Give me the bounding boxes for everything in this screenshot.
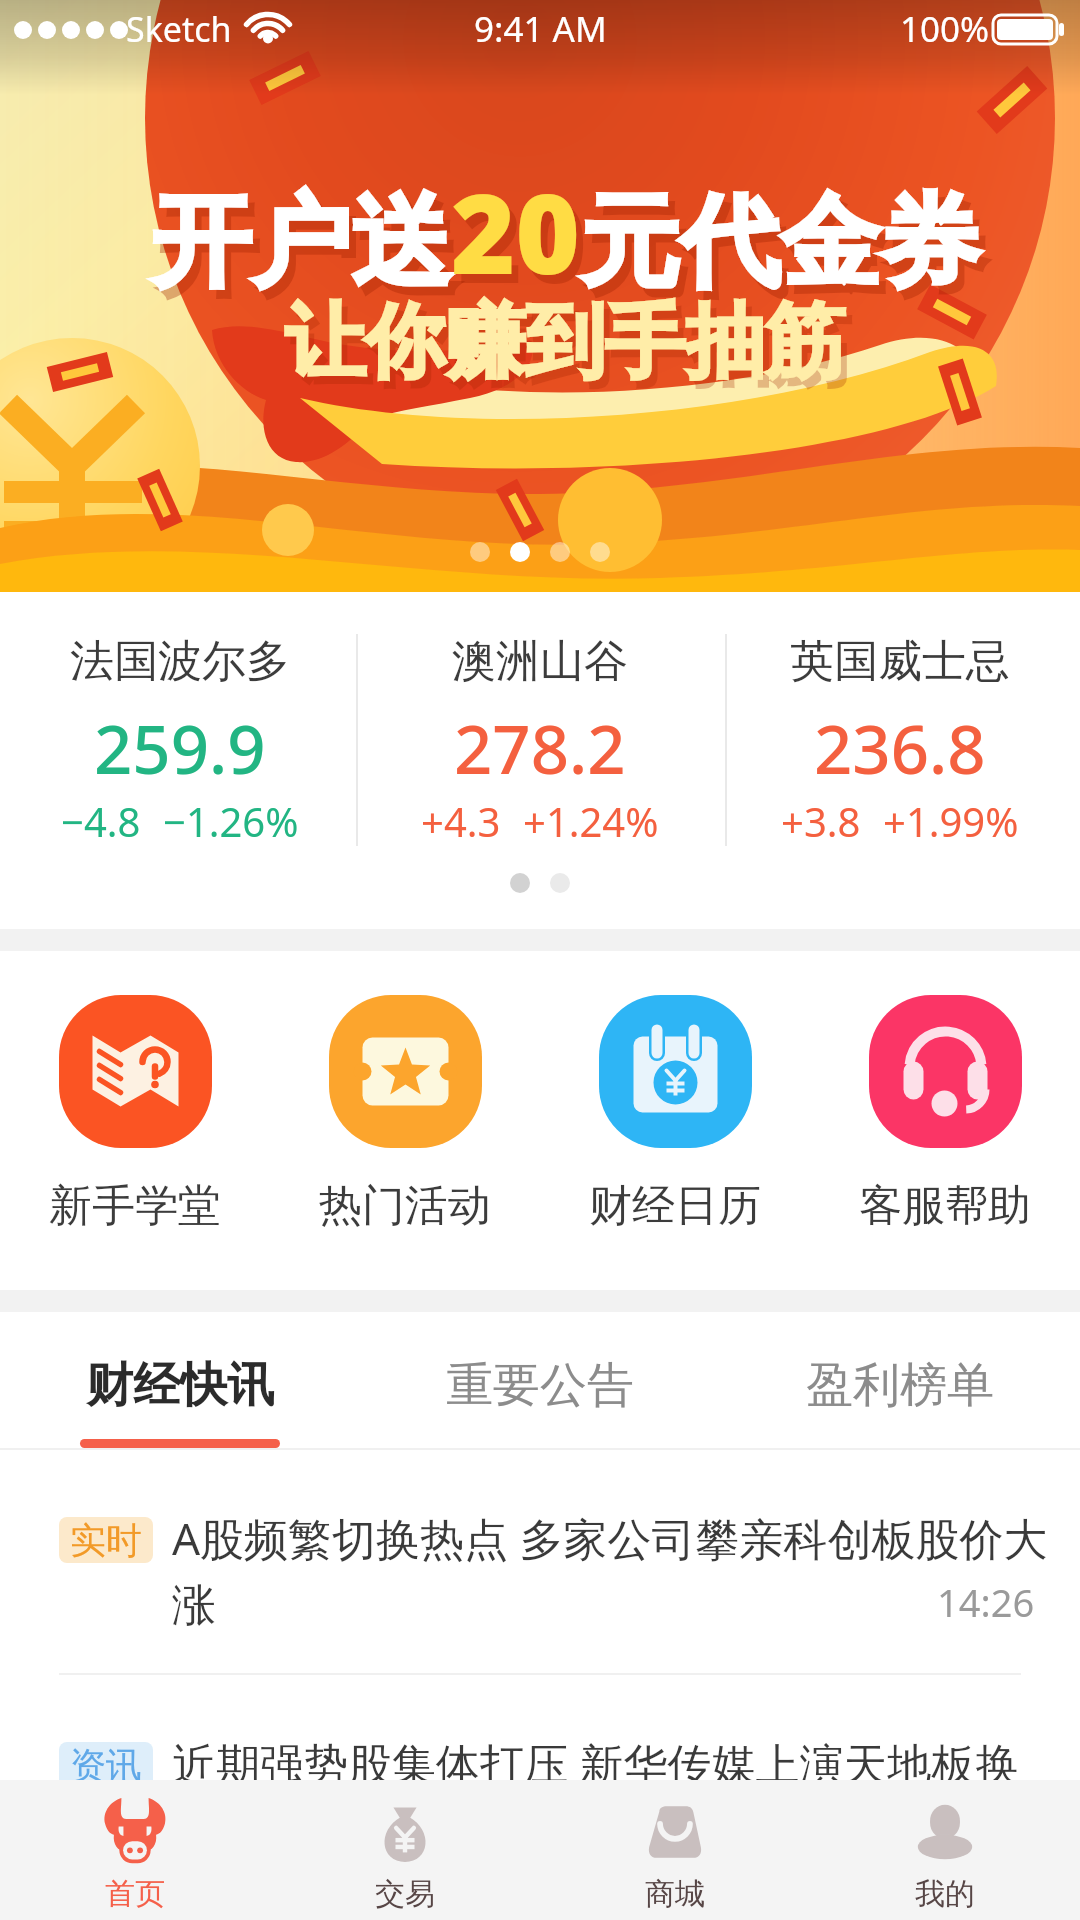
staticText: −1.26% [163,794,299,848]
staticText: Sketch [126,6,232,52]
staticText: 法国波尔多 [70,634,290,689]
staticText: 盈利榜单 [806,1356,994,1415]
staticText: 首页 [105,1875,165,1913]
staticText: 客服帮助 [859,1179,1031,1233]
staticText: 重要公告 [446,1356,634,1415]
staticText: +4.3 [421,794,501,848]
button[interactable]: 商城 [540,1780,810,1920]
staticText: 让你赚到手抽筋 [285,292,845,393]
staticText: 财经日历 [589,1179,761,1233]
staticText: 14:26 [937,1576,1035,1628]
staticText: −4.8 [61,794,141,848]
staticText: 278.2 [454,702,626,793]
button[interactable]: 我的 [810,1780,1080,1920]
button[interactable]: Promotion banner [0,0,1080,592]
button[interactable]: 澳洲山谷 [360,592,720,862]
staticText: 让你赚到手抽筋 [291,300,851,401]
staticText: 商城 [645,1875,705,1913]
button[interactable]: 首页 [0,1780,270,1920]
staticText: 热门活动 [319,1179,491,1233]
staticText: 元代金券 [580,180,980,306]
button[interactable]: 财经日历 [540,951,810,1290]
staticText: 英国威士忌 [790,634,1010,689]
button[interactable]: 新手学堂 [0,951,270,1290]
staticText: 100% [900,5,990,53]
staticText: 资讯 [70,1743,142,1788]
staticText: 20 [458,165,587,315]
staticText: 实时 [70,1518,142,1563]
button[interactable]: 英国威士忌 [720,592,1080,862]
staticText: +1.99% [883,794,1019,848]
button[interactable]: 客服帮助 [810,951,1080,1290]
staticText: +1.24% [523,794,659,848]
button[interactable]: 资讯 [0,1675,1080,1825]
button[interactable]: 交易 [270,1780,540,1920]
staticText: 9:41 AM [474,5,607,53]
staticText: 涨 [172,1578,216,1633]
staticText: 开户送 [158,189,458,315]
staticText: +3.8 [781,794,861,848]
staticText: A股频繁切换热点 多家公司攀亲科创板股价大 [172,1508,1048,1568]
staticText: 财经快讯 [86,1356,274,1415]
staticText: 259.9 [94,702,266,793]
button[interactable]: 盈利榜单 [720,1312,1080,1450]
staticText: 新手学堂 [49,1179,221,1233]
staticText: 元代金券 [587,189,987,315]
button[interactable]: 热门活动 [270,951,540,1290]
button[interactable]: 法国波尔多 [0,592,360,862]
staticText: 236.8 [814,702,986,793]
staticText: 我的 [915,1875,975,1913]
staticText: 近期强势股集体打压 新华传媒上演天地板换 [172,1733,1020,1793]
button[interactable]: 财经快讯 [0,1312,360,1450]
staticText: 开户送 [151,180,451,306]
staticText: 20 [451,156,580,306]
button[interactable]: 重要公告 [360,1312,720,1450]
staticText: 交易 [375,1875,435,1913]
button[interactable]: 实时 [0,1450,1080,1675]
staticText: 澳洲山谷 [452,634,628,689]
